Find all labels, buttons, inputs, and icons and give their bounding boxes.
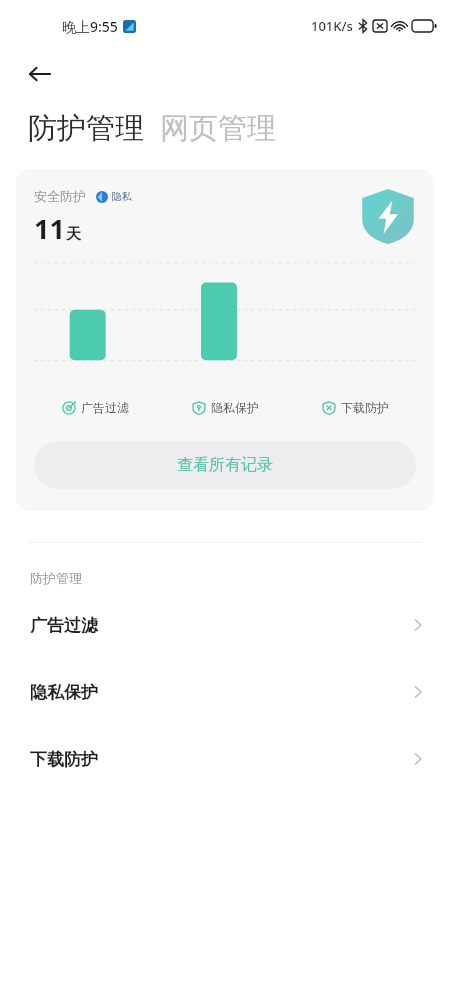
staticText: 天 [66, 225, 81, 244]
button[interactable]: 查看所有记录 [34, 441, 416, 489]
staticText: 网页管理 [160, 110, 276, 147]
staticText: 查看所有记录 [177, 455, 273, 475]
staticText: 防护管理 [28, 110, 144, 147]
staticText: 隐私 [112, 190, 132, 203]
button[interactable]: 网页管理 [160, 110, 276, 147]
staticText: 防护管理 [30, 570, 82, 586]
staticText: 隐私保护 [30, 682, 98, 703]
staticText: 101K/s [311, 17, 353, 35]
button[interactable]: 下载防护 [0, 742, 450, 776]
staticText: 隐私保护 [211, 400, 259, 415]
staticText: 下载防护 [341, 400, 389, 415]
button[interactable]: 广告过滤 [0, 608, 450, 642]
staticText: 安全防护 [34, 188, 86, 204]
button[interactable]: 隐私保护 [0, 675, 450, 709]
staticText: 下载防护 [30, 749, 98, 770]
staticText: 广告过滤 [30, 615, 98, 636]
button[interactable]: 防护管理 [28, 110, 144, 147]
staticText: 11 [34, 210, 65, 247]
staticText: 晚上9:55 [62, 17, 118, 36]
button[interactable]: 返回 [18, 52, 62, 96]
staticText: 广告过滤 [81, 400, 129, 415]
